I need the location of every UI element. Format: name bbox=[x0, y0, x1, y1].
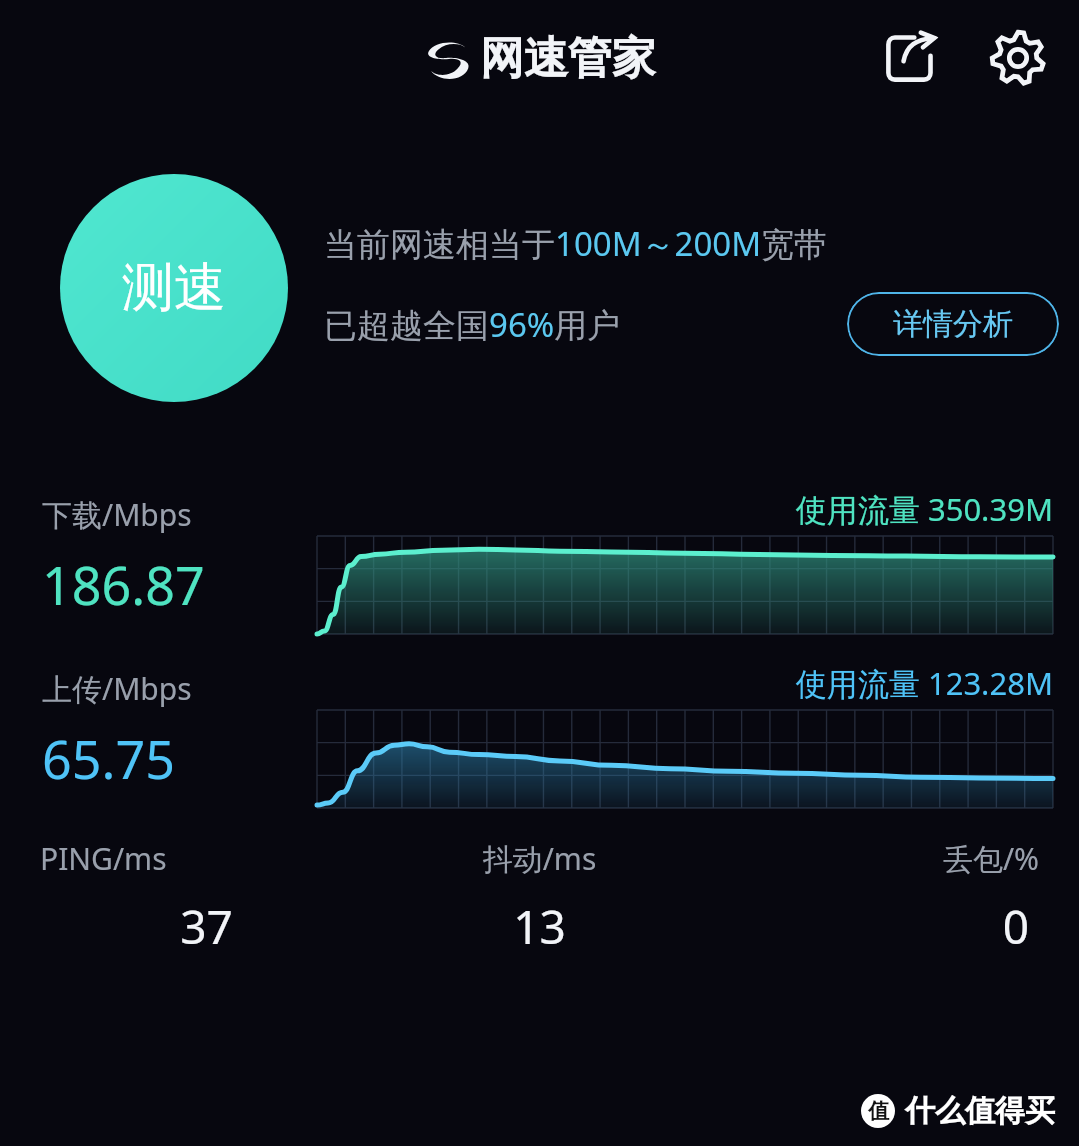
staticText: 13 bbox=[373, 895, 706, 958]
staticText: 65.75 bbox=[42, 723, 175, 794]
button[interactable]: Settings bbox=[983, 23, 1053, 93]
staticText: 使用流量 123.28M bbox=[795, 662, 1053, 704]
button[interactable]: 测速 bbox=[60, 174, 288, 402]
button[interactable]: Share bbox=[875, 23, 945, 93]
staticText: 详情分析 bbox=[893, 305, 1013, 343]
button[interactable]: 详情分析 bbox=[847, 292, 1059, 356]
staticText: 0 bbox=[706, 895, 1029, 958]
staticText: 37 bbox=[40, 895, 373, 958]
staticText: 网速管家 bbox=[480, 31, 656, 86]
staticText: 抖动/ms bbox=[373, 838, 706, 879]
staticText: 使用流量 350.39M bbox=[795, 488, 1053, 530]
staticText: 值 bbox=[868, 1098, 889, 1124]
staticText: 什么值得买 bbox=[905, 1092, 1055, 1130]
staticText: 当前网速相当于100M～200M宽带 bbox=[324, 221, 828, 266]
button[interactable]: PING/ms bbox=[40, 838, 373, 958]
staticText: 测速 bbox=[122, 255, 226, 321]
staticText: 186.87 bbox=[42, 549, 205, 620]
staticText: 丢包/% bbox=[706, 838, 1039, 879]
staticText: 下载/Mbps bbox=[42, 494, 192, 535]
staticText: 已超越全国96%用户 bbox=[324, 302, 621, 347]
button[interactable]: 丢包/% bbox=[706, 838, 1039, 958]
staticText: PING/ms bbox=[40, 838, 373, 879]
button[interactable]: 抖动/ms bbox=[373, 838, 706, 958]
staticText: 上传/Mbps bbox=[42, 668, 192, 709]
